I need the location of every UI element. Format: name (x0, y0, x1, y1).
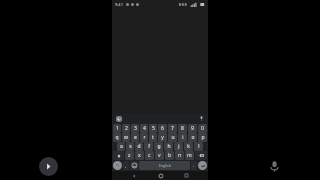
button[interactable]: Backspace (195, 151, 207, 160)
button[interactable]: 4 (140, 124, 148, 133)
staticText: l (198, 143, 200, 150)
staticText: n (178, 152, 182, 159)
button[interactable]: b (165, 151, 174, 160)
button[interactable]: 1 (113, 124, 121, 133)
button[interactable]: 6 (158, 124, 167, 133)
staticText: 4 (143, 125, 146, 132)
button[interactable]: Comma (123, 161, 129, 170)
staticText: f (148, 143, 150, 150)
staticText: . (193, 163, 195, 168)
staticText: i (182, 134, 184, 141)
button[interactable]: Voice input (198, 115, 205, 122)
button[interactable]: j (174, 142, 183, 151)
staticText: o (191, 134, 195, 141)
button[interactable]: 2 (122, 124, 130, 133)
button[interactable]: w (122, 133, 130, 142)
button[interactable]: Home (156, 171, 165, 180)
button[interactable]: 5 (149, 124, 157, 133)
button[interactable]: y (158, 133, 167, 142)
staticText: 0 (201, 125, 204, 132)
staticText: b (168, 152, 172, 159)
staticText: r (143, 134, 146, 141)
button[interactable]: s (126, 142, 134, 151)
button[interactable]: g (154, 142, 163, 151)
staticText: 3 (134, 125, 137, 132)
staticText: m (187, 152, 192, 159)
button[interactable]: i (178, 133, 187, 142)
staticText: 2 (125, 125, 128, 132)
staticText: u (171, 134, 175, 141)
staticText: c (148, 152, 151, 159)
button[interactable]: n (175, 151, 184, 160)
staticText: j (178, 143, 180, 150)
button[interactable]: q (113, 133, 121, 142)
button[interactable]: r (140, 133, 148, 142)
button[interactable]: x (135, 151, 144, 160)
button[interactable]: d (135, 142, 143, 151)
staticText: g (157, 143, 161, 150)
button[interactable]: Enter (198, 161, 207, 170)
staticText: ?1 (116, 164, 120, 168)
staticText: s (129, 143, 132, 150)
staticText: t (152, 134, 154, 141)
button[interactable]: l (194, 142, 203, 151)
staticText: x (138, 152, 141, 159)
staticText: e (134, 134, 137, 141)
staticText: w (124, 134, 128, 141)
staticText: 9 (191, 125, 194, 132)
button[interactable]: Next (39, 157, 58, 176)
staticText: , (125, 163, 127, 168)
staticText: 8 (181, 125, 184, 132)
staticText: p (201, 134, 205, 141)
staticText: h (167, 143, 171, 150)
button[interactable]: p (198, 133, 207, 142)
button[interactable]: 8 (178, 124, 187, 133)
button[interactable]: o (188, 133, 197, 142)
staticText: y (161, 134, 164, 141)
button[interactable]: k (184, 142, 193, 151)
button[interactable]: Period (191, 161, 197, 170)
button[interactable]: z (125, 151, 134, 160)
button[interactable]: t (149, 133, 157, 142)
button[interactable]: c (145, 151, 154, 160)
button[interactable]: f (144, 142, 153, 151)
button[interactable]: v (155, 151, 164, 160)
button[interactable]: h (164, 142, 173, 151)
button[interactable]: m (185, 151, 194, 160)
staticText: English (159, 163, 171, 168)
staticText: 9:41 (115, 2, 123, 7)
staticText: 6 (161, 125, 164, 132)
staticText: 5 (152, 125, 155, 132)
staticText: 7 (171, 125, 174, 132)
staticText: k (187, 143, 190, 150)
button[interactable]: Shift (113, 151, 124, 160)
button[interactable]: a (117, 142, 125, 151)
button[interactable]: Back (129, 171, 138, 180)
button[interactable]: e (131, 133, 139, 142)
staticText: q (115, 134, 119, 141)
button[interactable]: 0 (198, 124, 207, 133)
staticText: a (120, 143, 123, 150)
staticText: z (128, 152, 131, 159)
button[interactable]: Microphone (264, 156, 284, 176)
button[interactable]: u (168, 133, 177, 142)
button[interactable]: Emoji (130, 161, 138, 170)
staticText: v (158, 152, 161, 159)
button[interactable]: 7 (168, 124, 177, 133)
button[interactable]: Recents (182, 171, 191, 180)
button[interactable]: 3 (131, 124, 139, 133)
button[interactable]: English (139, 161, 190, 170)
staticText: 1 (116, 125, 119, 132)
button[interactable]: Symbols (113, 161, 122, 170)
button[interactable]: 9 (188, 124, 197, 133)
staticText: d (137, 143, 141, 150)
button[interactable]: Clipboard history (115, 115, 122, 122)
